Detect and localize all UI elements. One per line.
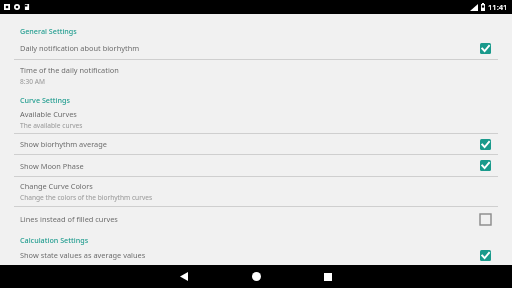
staticText: Change Curve Colors <box>20 181 93 191</box>
button[interactable]: Lines instead of filled curves <box>474 208 496 230</box>
staticText: Daily notification about biorhythm <box>20 43 140 53</box>
staticText: 8:30 AM <box>20 77 45 86</box>
button[interactable]: Back <box>148 265 220 288</box>
button[interactable]: Show biorhythm average <box>474 134 496 154</box>
button[interactable]: Home <box>220 265 292 288</box>
staticText: The available curves <box>20 121 83 130</box>
staticText: Change the colors of the biorhythm curve… <box>20 193 153 202</box>
button[interactable]: Recent apps <box>292 265 364 288</box>
staticText: General Settings <box>20 26 77 36</box>
button[interactable]: Lines instead of filled curves <box>0 207 512 231</box>
button[interactable]: Show state values as average values <box>0 245 512 265</box>
button[interactable]: Daily notification about biorhythm <box>0 36 512 59</box>
staticText: Show Moon Phase <box>20 161 84 171</box>
staticText: Show state values as average values <box>20 250 146 260</box>
staticText: Available Curves <box>20 109 77 119</box>
staticText: Time of the daily notification <box>20 65 119 75</box>
button[interactable]: Time of the daily notification <box>0 60 512 91</box>
button[interactable]: Change Curve Colors <box>0 177 512 206</box>
staticText: Lines instead of filled curves <box>20 214 118 224</box>
button[interactable]: Available Curves <box>0 105 512 133</box>
staticText: Calculation Settings <box>20 235 89 245</box>
button[interactable]: Show Moon Phase <box>0 155 512 176</box>
button[interactable]: Show state values as average values <box>474 245 496 265</box>
button[interactable]: Daily notification about biorhythm <box>474 37 496 59</box>
staticText: Curve Settings <box>20 95 70 105</box>
staticText: Show biorhythm average <box>20 139 107 149</box>
staticText: 11:41 <box>488 2 508 12</box>
button[interactable]: Show Moon Phase <box>474 155 496 176</box>
button[interactable]: Show biorhythm average <box>0 134 512 154</box>
